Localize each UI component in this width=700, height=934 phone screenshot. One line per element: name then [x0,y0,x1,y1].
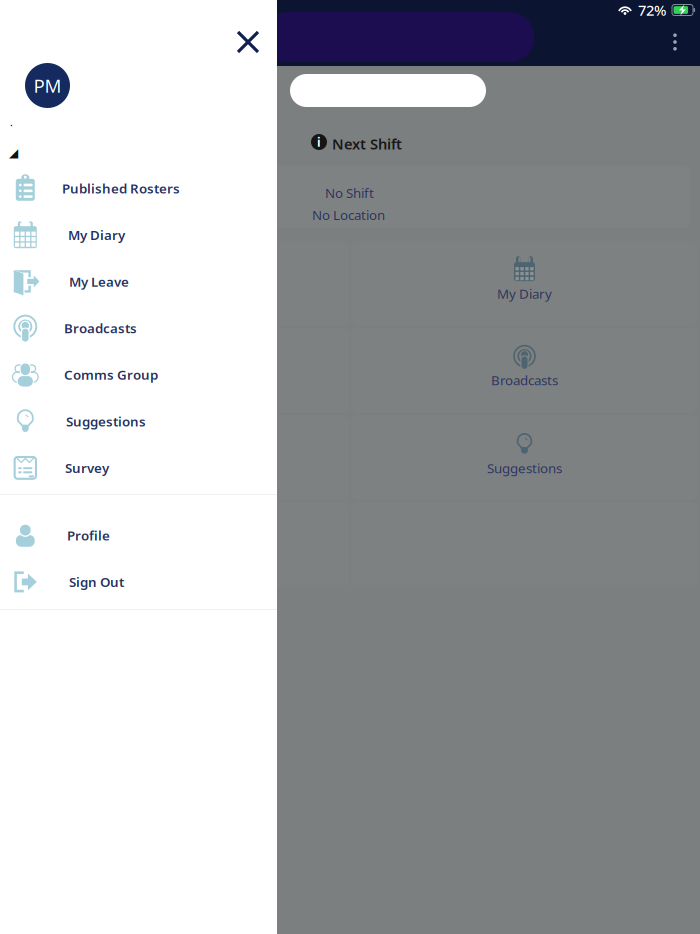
staticText: Broadcasts [491,371,558,389]
staticText: My Leave [69,273,129,290]
staticText: Published Rosters [62,179,180,197]
staticText: Suggestions [487,459,562,477]
staticText: No Shift [325,184,374,202]
button[interactable]: My Diary [0,212,277,258]
staticText: . [10,115,13,129]
button[interactable]: Menu tile [351,241,698,326]
button[interactable]: My Leave [0,258,277,305]
staticText: Comms Group [64,366,158,383]
staticText: 72% [638,0,666,20]
staticText: Profile [67,526,110,544]
staticText: Sign Out [69,573,124,591]
button[interactable]: Profile [0,512,277,559]
button[interactable]: Menu tile [2,502,349,587]
button[interactable]: Published Rosters [0,165,277,212]
staticText: My Diary [497,285,552,302]
button[interactable]: Close menu [226,20,270,64]
staticText: PM [33,73,61,98]
button[interactable]: Menu tile [2,241,349,326]
button[interactable]: Suggestions [0,398,277,445]
staticText: Suggestions [66,412,146,430]
staticText: Broadcasts [64,319,137,337]
button[interactable]: Menu tile [351,415,698,500]
staticText: My Diary [68,226,125,244]
button[interactable]: Broadcasts [0,305,277,351]
button[interactable]: Comms Group [0,351,277,398]
staticText: Survey [65,459,109,477]
button[interactable]: Sign Out [0,559,277,605]
button[interactable]: Menu tile [2,415,349,500]
staticText: i [317,134,321,150]
staticText: No Location [312,206,385,224]
staticText: ◢ [9,146,18,160]
button[interactable]: More options [655,22,695,62]
staticText: Next Shift [332,134,402,153]
button[interactable]: Survey [0,445,277,491]
button[interactable]: Menu tile [2,328,349,413]
button[interactable]: Menu tile [351,328,698,413]
